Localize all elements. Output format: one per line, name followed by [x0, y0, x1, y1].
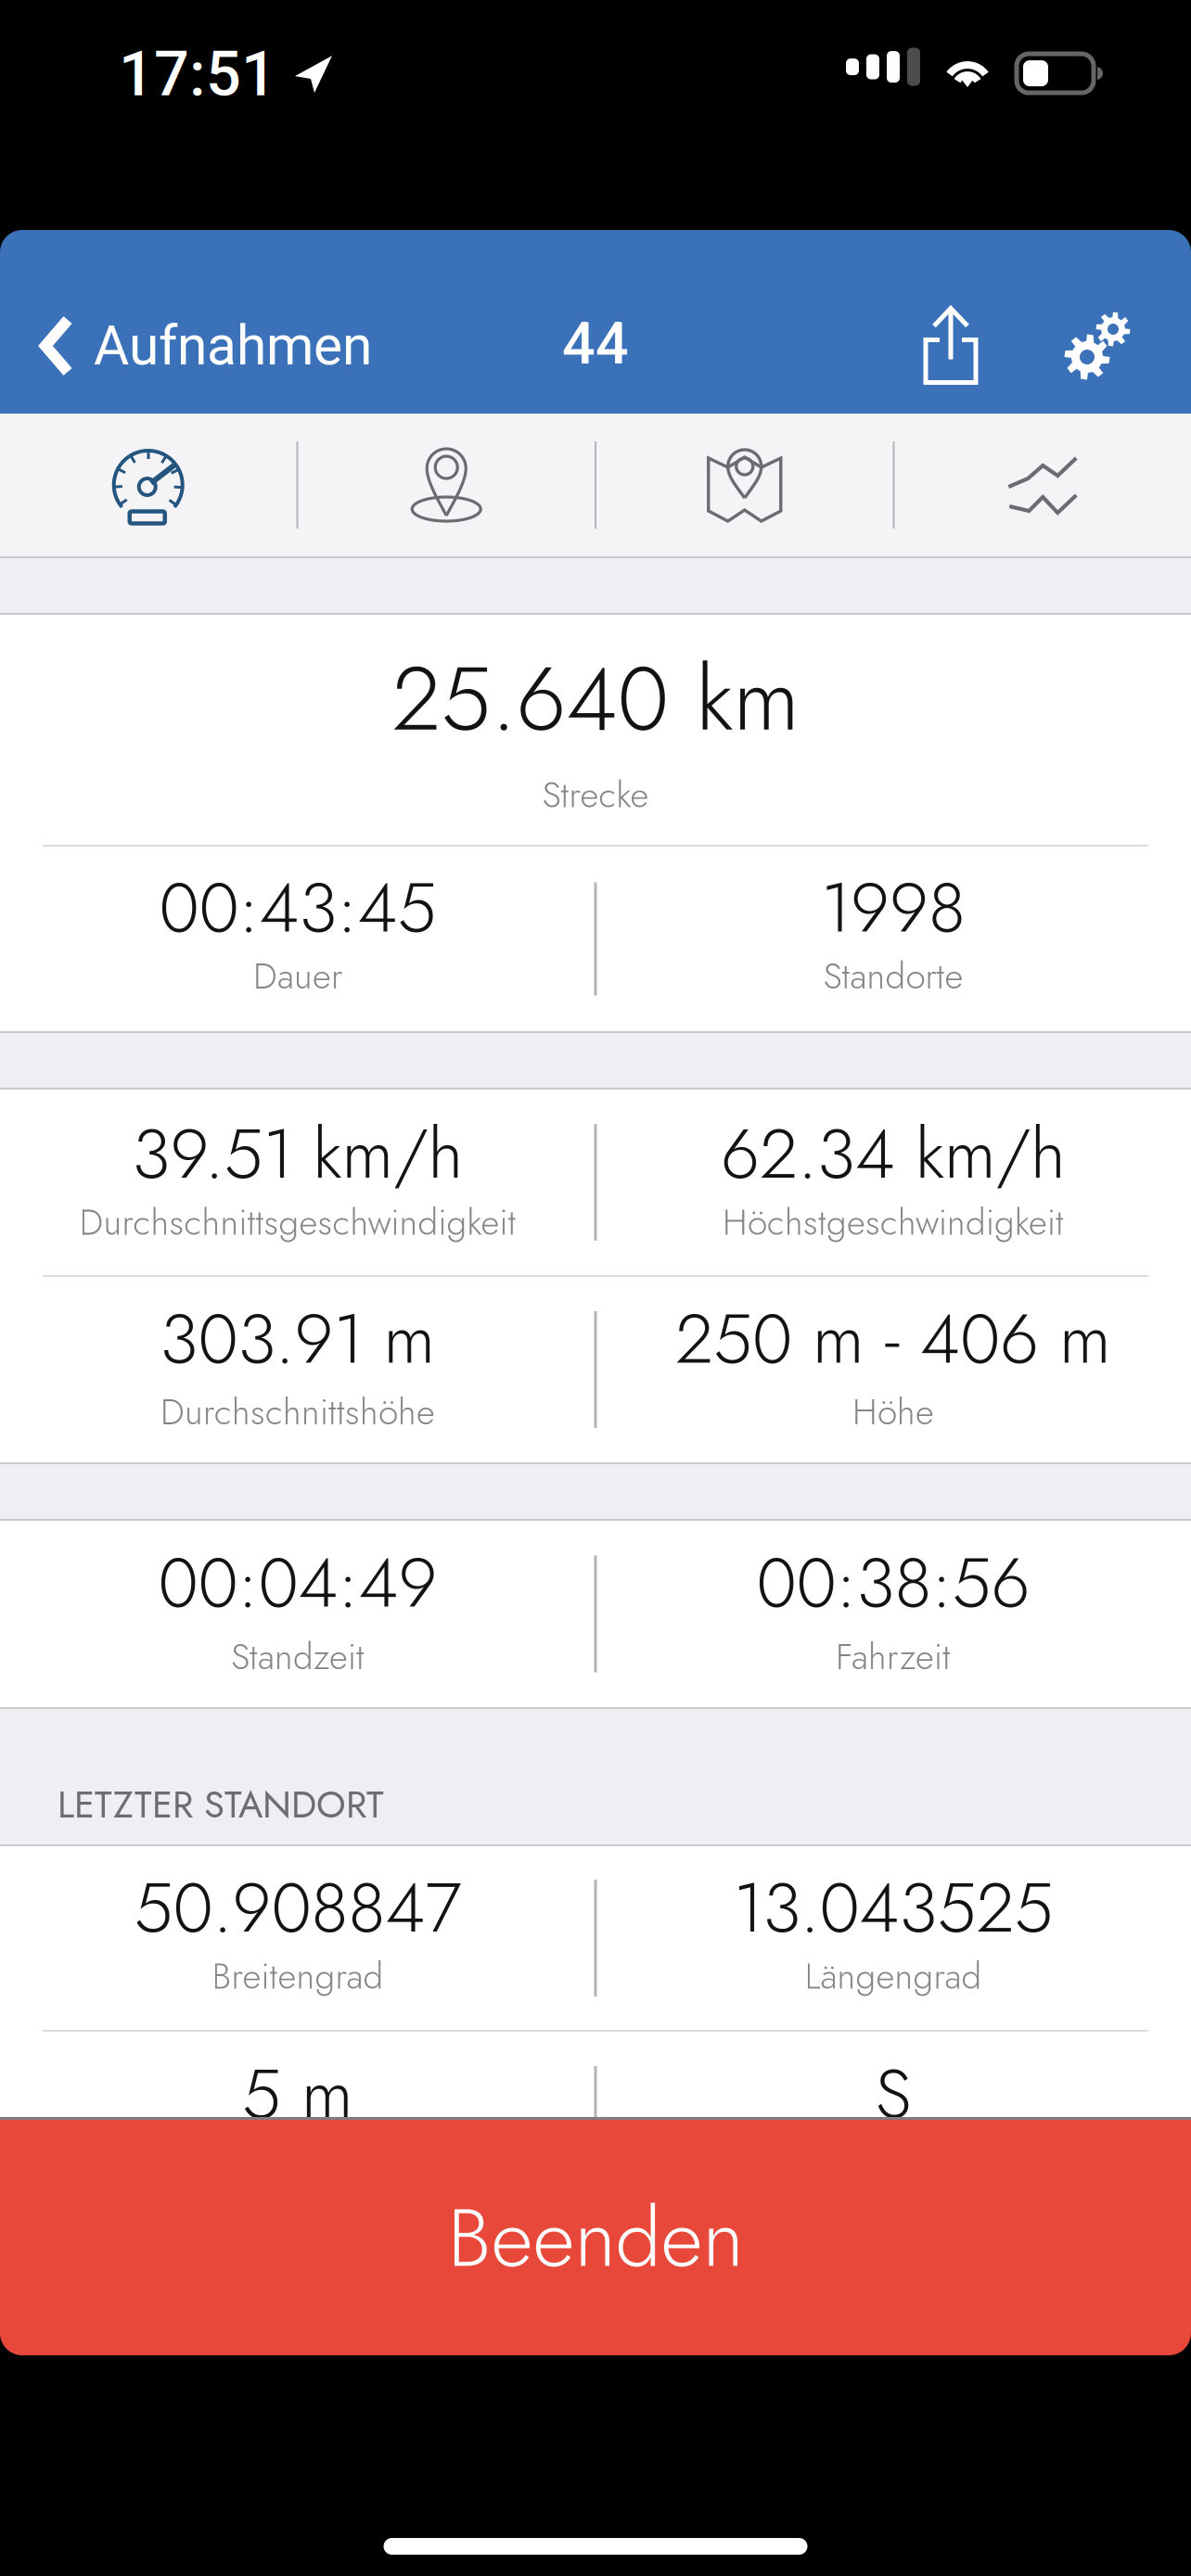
staticText: 5 m: [242, 2044, 353, 2144]
staticText: Höhe: [852, 1386, 934, 1438]
staticText: 44: [562, 310, 629, 378]
staticText: S: [875, 2044, 911, 2144]
staticText: 50.908847: [134, 1857, 461, 1958]
staticText: 25.640 km: [392, 634, 799, 763]
staticText: Höchstgeschwindigkeit: [723, 1196, 1064, 1248]
button[interactable]: Karte: [596, 414, 893, 556]
staticText: 303.91 m: [160, 1289, 435, 1389]
staticText: 1998: [821, 857, 966, 957]
staticText: 00:43:45: [159, 857, 436, 957]
staticText: 250 m - 406 m: [675, 1289, 1111, 1389]
staticText: 17:51: [119, 38, 276, 110]
staticText: Standzeit: [231, 1631, 365, 1682]
staticText: Durchschnittsgeschwindigkeit: [79, 1196, 516, 1248]
button[interactable]: Statistik: [0, 414, 296, 556]
button[interactable]: Diagramm: [895, 414, 1191, 556]
staticText: 00:04:49: [158, 1532, 437, 1632]
staticText: 62.34 km/h: [721, 1104, 1066, 1204]
button[interactable]: Einstellungen: [1044, 230, 1148, 414]
staticText: Aufnahmen: [94, 314, 372, 378]
staticText: Dauer: [253, 950, 342, 1002]
button[interactable]: Beenden: [0, 2120, 1191, 2355]
staticText: Breitengrad: [212, 1950, 384, 2002]
staticText: 39.51 km/h: [132, 1104, 463, 1204]
staticText: Fahrzeit: [836, 1631, 951, 1682]
staticText: LETZTER STANDORT: [58, 1778, 384, 1831]
staticText: Längengrad: [805, 1950, 982, 2002]
staticText: Durchschnittshöhe: [160, 1386, 435, 1438]
button[interactable]: Aufnahmen: [0, 230, 389, 414]
button[interactable]: Teilen: [896, 230, 1005, 414]
button[interactable]: Letzter Standort: [298, 414, 595, 556]
staticText: Beenden: [448, 2179, 743, 2297]
staticText: 00:38:56: [756, 1532, 1030, 1632]
staticText: Strecke: [542, 769, 649, 821]
staticText: 13.043525: [733, 1857, 1053, 1958]
staticText: Standorte: [823, 950, 963, 1002]
